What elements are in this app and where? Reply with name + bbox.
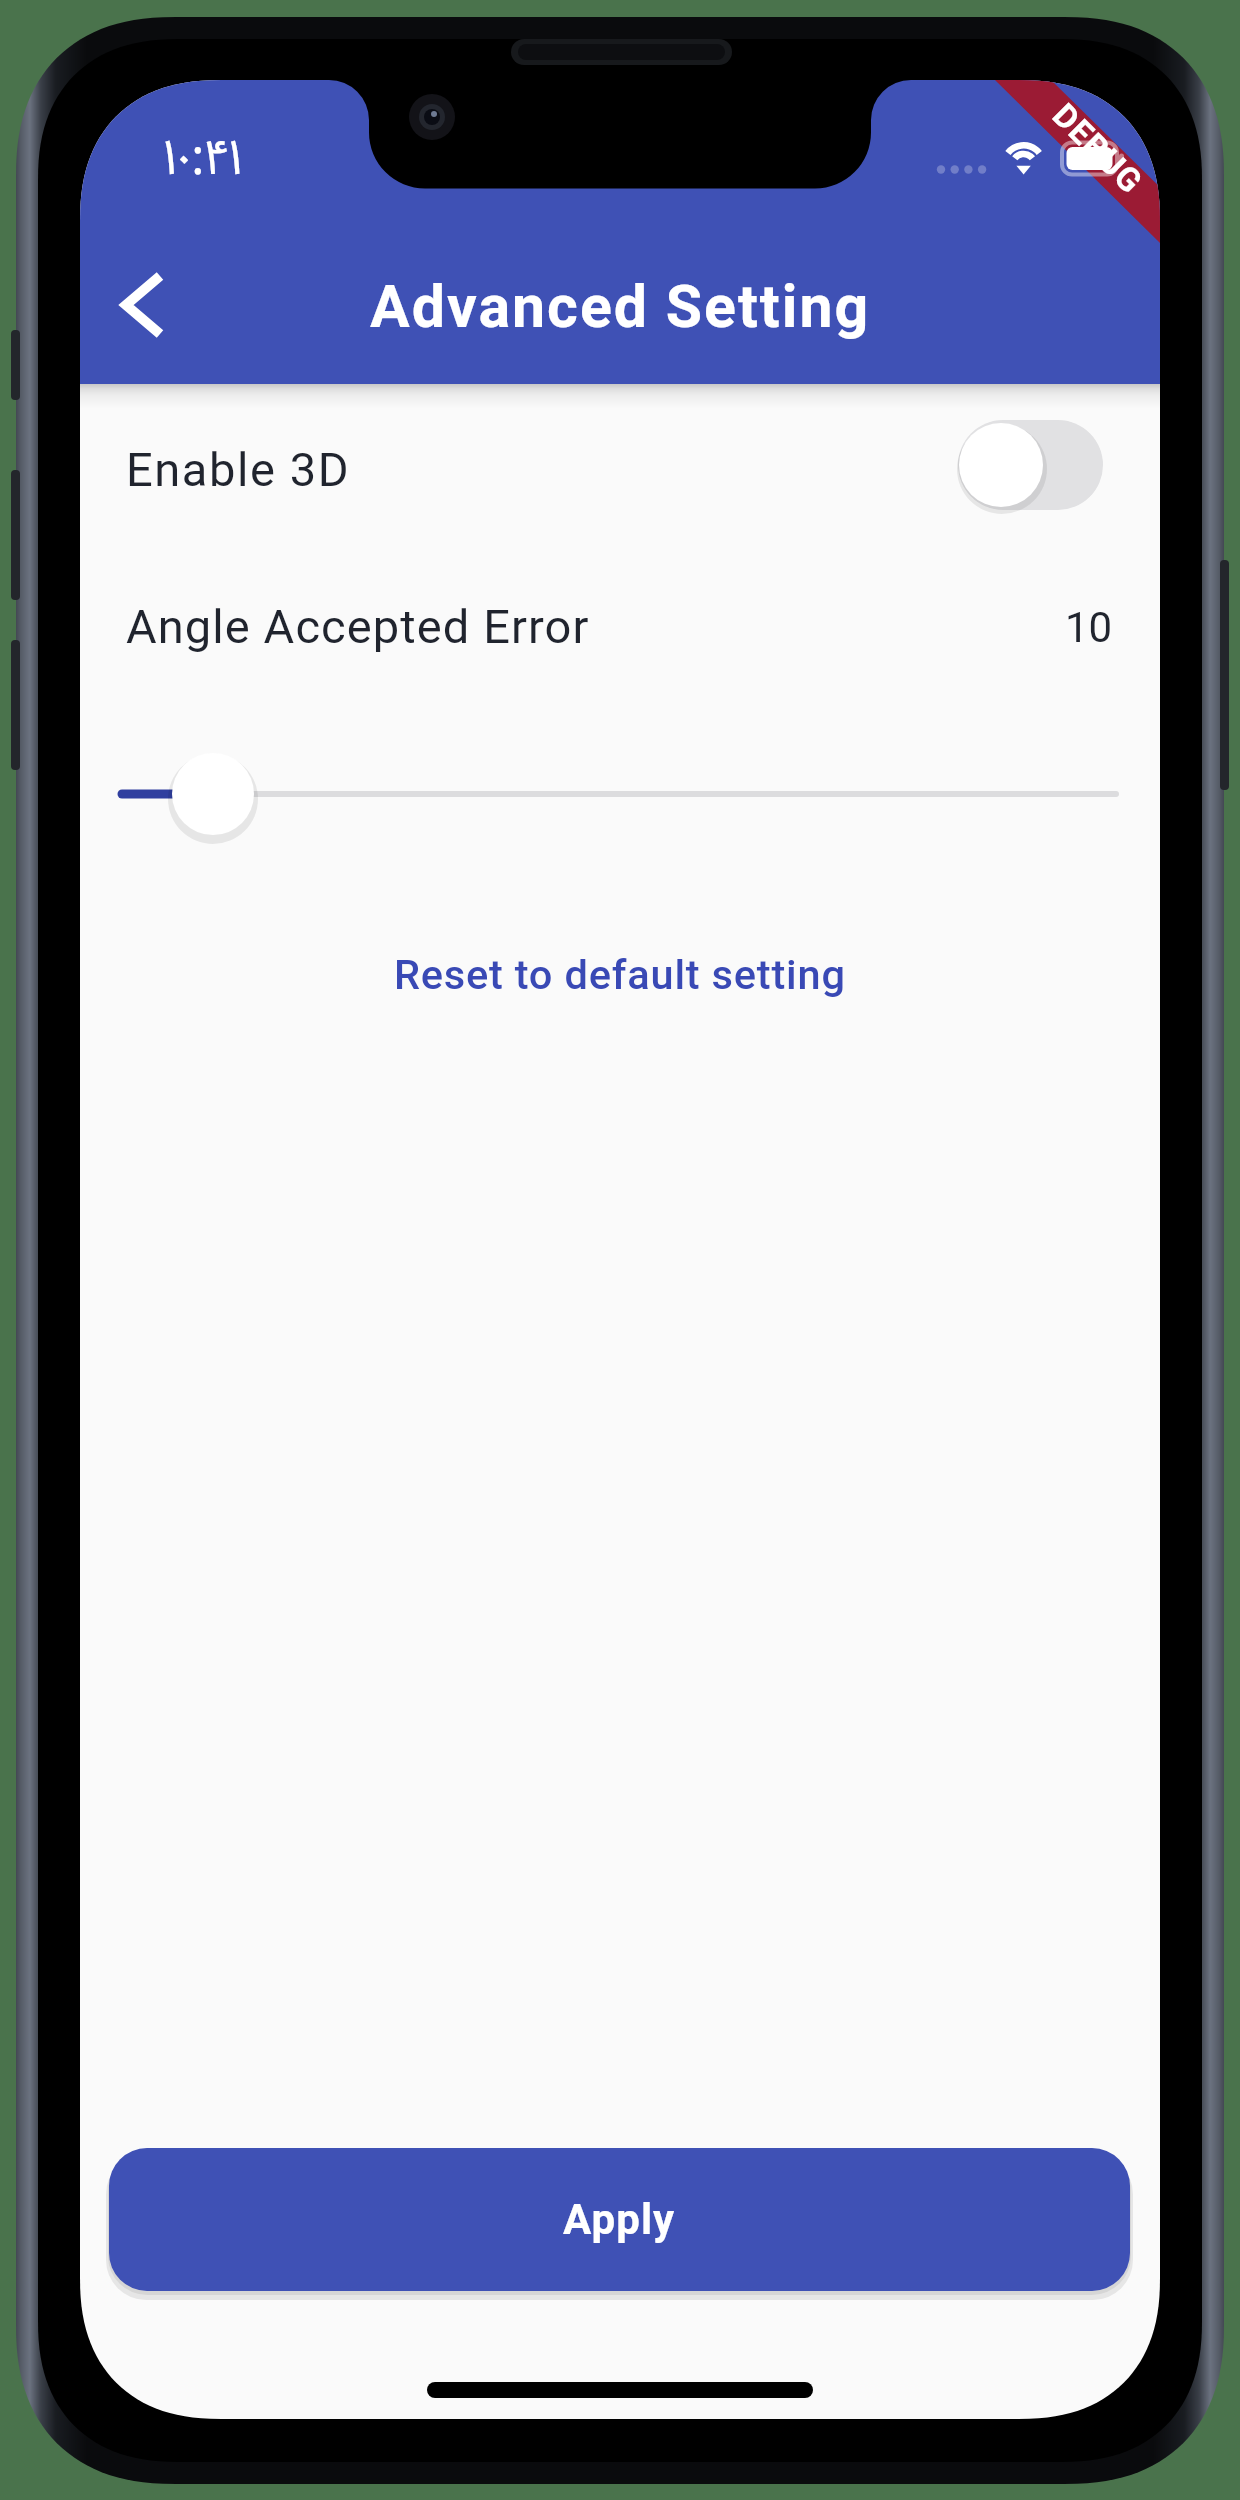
button[interactable]: Reset to default setting (354, 928, 886, 1021)
staticText: Reset to default setting (394, 950, 846, 999)
button[interactable]: Back (80, 243, 204, 367)
button[interactable]: Enable 3D toggle (958, 420, 1103, 510)
button[interactable]: Apply (109, 2148, 1130, 2291)
button[interactable]: Angle accepted error slider (80, 739, 1160, 849)
staticText: Angle Accepted Error (126, 599, 590, 654)
button[interactable]: Enable 3D (80, 395, 1160, 555)
staticText: ۱۰:۴۱ (163, 122, 243, 189)
staticText: Enable 3D (126, 442, 351, 497)
staticText: DEBUG (1045, 96, 1151, 202)
staticText: 10 (1065, 603, 1113, 652)
staticText: Advanced Setting (370, 272, 871, 341)
staticText: Apply (563, 2195, 676, 2244)
